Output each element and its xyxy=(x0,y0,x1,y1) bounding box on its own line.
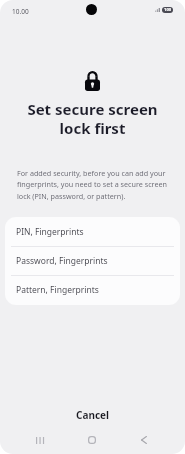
button[interactable]: Password, Fingerprints xyxy=(5,247,180,275)
button[interactable]: Pattern, Fingerprints xyxy=(5,276,180,304)
staticText: For added security, before you can add y… xyxy=(17,168,169,202)
staticText: 10.00 xyxy=(12,7,29,16)
staticText: Set secure screen lock first xyxy=(22,99,163,138)
staticText: Password, Fingerprints xyxy=(16,255,108,267)
staticText: Pattern, Fingerprints xyxy=(16,284,99,296)
staticText: 100 xyxy=(164,7,172,13)
button[interactable]: Cancel xyxy=(0,403,185,427)
button[interactable]: Home xyxy=(76,426,108,454)
button[interactable]: Recent apps xyxy=(24,426,56,454)
button[interactable]: Back xyxy=(128,426,160,454)
staticText: PIN, Fingerprints xyxy=(16,226,84,238)
staticText: Cancel xyxy=(76,408,110,422)
button[interactable]: PIN, Fingerprints xyxy=(5,218,180,246)
